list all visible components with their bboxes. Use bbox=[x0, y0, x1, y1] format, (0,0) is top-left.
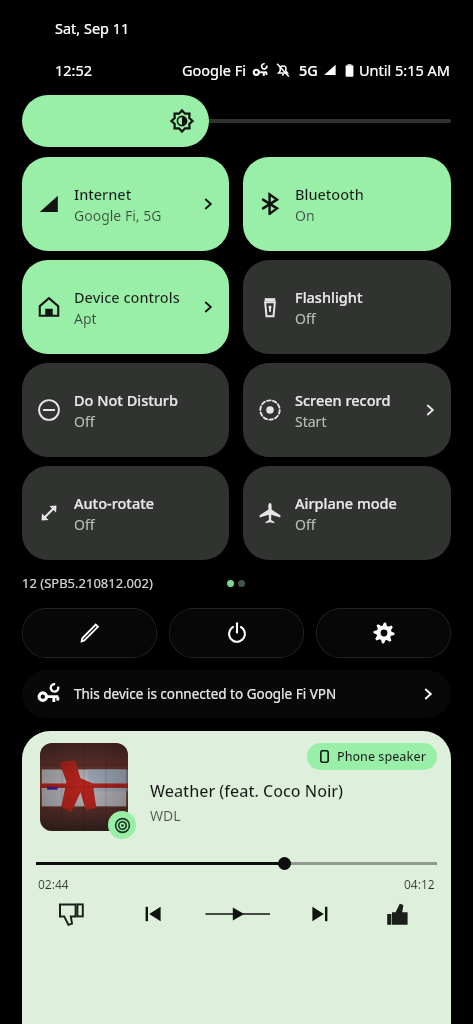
staticText: WDL bbox=[150, 806, 181, 825]
button[interactable]: Play bbox=[213, 894, 261, 934]
button[interactable]: Edit tiles bbox=[22, 608, 157, 658]
staticText: 04:12 bbox=[404, 876, 435, 892]
staticText: Phone speaker bbox=[337, 748, 426, 765]
staticText: 5G bbox=[299, 60, 318, 80]
staticText: Auto-rotate bbox=[74, 493, 155, 513]
staticText: Airplane mode bbox=[295, 493, 397, 513]
button[interactable]: Flashlight bbox=[243, 260, 451, 354]
staticText: Until 5:15 AM bbox=[359, 60, 451, 80]
staticText: Start bbox=[295, 412, 327, 431]
staticText: 02:44 bbox=[38, 876, 69, 892]
button[interactable]: Auto-rotate bbox=[22, 466, 229, 560]
staticText: Google Fi, 5G bbox=[74, 206, 162, 225]
button[interactable]: Thumbs down bbox=[48, 894, 96, 934]
staticText: 12:52 bbox=[55, 60, 93, 80]
button[interactable]: Previous bbox=[130, 894, 178, 934]
button[interactable]: Seek bar bbox=[36, 855, 437, 871]
staticText: Off bbox=[295, 515, 316, 534]
staticText: Off bbox=[74, 412, 95, 431]
staticText: Device controls bbox=[74, 287, 180, 307]
button[interactable]: Airplane mode bbox=[243, 466, 451, 560]
staticText: Off bbox=[295, 309, 316, 328]
button[interactable]: Power bbox=[169, 608, 304, 658]
button[interactable]: Internet bbox=[22, 157, 229, 251]
button[interactable]: Bluetooth bbox=[243, 157, 451, 251]
staticText: Sat, Sep 11 bbox=[55, 18, 130, 38]
button[interactable]: Phone speaker bbox=[22, 731, 451, 1024]
button[interactable]: Thumbs up bbox=[377, 894, 425, 934]
button[interactable]: Device controls bbox=[22, 260, 229, 354]
staticText: Flashlight bbox=[295, 287, 363, 307]
staticText: This device is connected to Google Fi VP… bbox=[74, 685, 337, 703]
staticText: Weather (feat. Coco Noir) bbox=[150, 780, 344, 802]
staticText: Off bbox=[74, 515, 95, 534]
button[interactable]: Brightness bbox=[22, 95, 451, 147]
staticText: On bbox=[295, 206, 315, 225]
staticText: Bluetooth bbox=[295, 184, 364, 204]
staticText: Internet bbox=[74, 184, 132, 204]
button[interactable]: Screen record bbox=[243, 363, 451, 457]
button[interactable]: Next bbox=[295, 894, 343, 934]
staticText: Do Not Disturb bbox=[74, 390, 178, 410]
button[interactable]: This device is connected to Google Fi VP… bbox=[22, 670, 451, 718]
button[interactable]: Do Not Disturb bbox=[22, 363, 229, 457]
staticText: Google Fi bbox=[182, 60, 246, 80]
staticText: Apt bbox=[74, 309, 97, 328]
button[interactable]: Phone speaker bbox=[307, 743, 437, 770]
button[interactable]: Settings bbox=[316, 608, 451, 658]
staticText: 12 (SPB5.210812.002) bbox=[22, 574, 153, 592]
staticText: Screen record bbox=[295, 390, 391, 410]
